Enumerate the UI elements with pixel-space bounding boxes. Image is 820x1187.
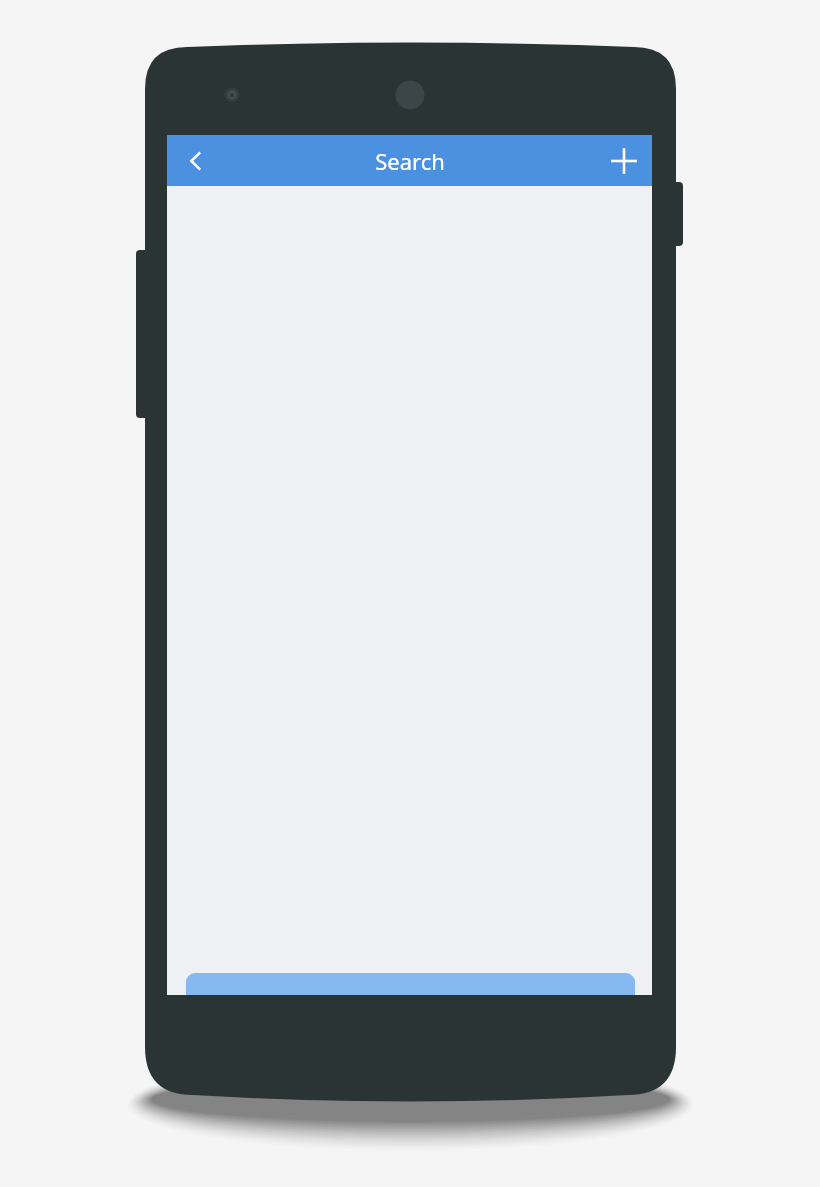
staticText: Search [375, 146, 445, 176]
button[interactable]: Back [170, 135, 222, 186]
button[interactable] [186, 973, 635, 995]
button[interactable]: Add [598, 135, 650, 186]
